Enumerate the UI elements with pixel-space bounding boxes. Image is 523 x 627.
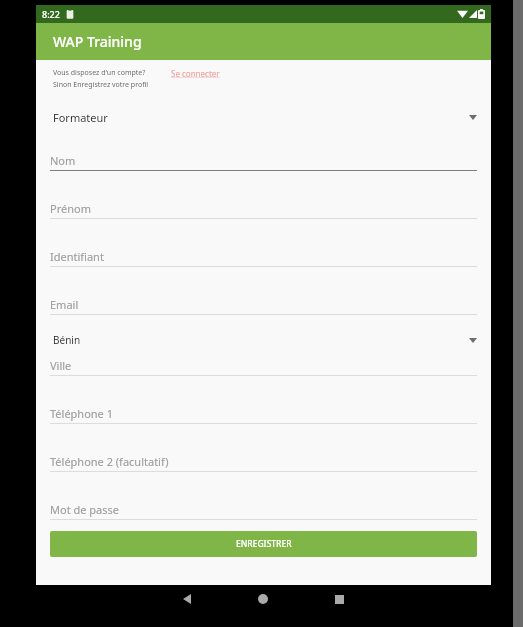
staticText: Prénom — [50, 201, 91, 216]
staticText: Ville — [50, 358, 72, 373]
button[interactable]: Formateur — [36, 102, 491, 132]
staticText: 8:22 — [42, 8, 60, 20]
staticText: Vous disposez d'un compte? — [53, 68, 146, 78]
button[interactable]: Nom — [50, 151, 477, 171]
button[interactable]: Se connecter — [171, 68, 220, 79]
button[interactable]: Téléphone 1 — [50, 404, 477, 424]
button[interactable]: ENREGISTRER — [50, 531, 477, 557]
button[interactable]: Home — [250, 586, 276, 612]
staticText: Formateur — [53, 110, 108, 125]
button[interactable]: Téléphone 2 (facultatif) — [50, 452, 477, 472]
staticText: Identifiant — [50, 249, 104, 264]
button[interactable]: Prénom — [50, 199, 477, 219]
button[interactable]: Email — [50, 295, 477, 315]
staticText: Mot de passe — [50, 502, 119, 517]
staticText: Email — [50, 297, 79, 312]
staticText: Téléphone 1 — [50, 406, 113, 421]
button[interactable]: Ville — [50, 356, 477, 376]
staticText: Bénin — [53, 333, 81, 347]
button[interactable]: Mot de passe — [50, 500, 477, 520]
staticText: Sinon Enregistrez votre profil — [53, 80, 149, 90]
staticText: Se connecter — [171, 68, 220, 79]
button[interactable]: Recent apps — [326, 586, 352, 612]
button[interactable]: Identifiant — [50, 247, 477, 267]
staticText: ENREGISTRER — [236, 538, 292, 550]
button[interactable]: Back — [174, 586, 200, 612]
button[interactable]: Bénin — [36, 325, 491, 355]
staticText: WAP Training — [53, 32, 142, 51]
staticText: Nom — [50, 153, 76, 168]
staticText: Téléphone 2 (facultatif) — [50, 454, 169, 469]
